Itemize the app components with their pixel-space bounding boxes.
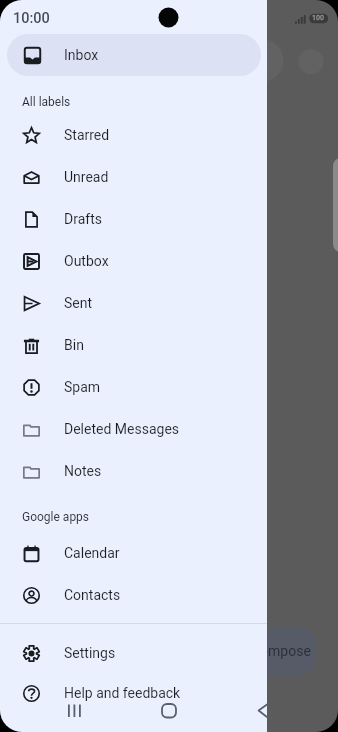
button[interactable]: Help and feedback xyxy=(0,672,267,714)
staticText: 100 xyxy=(312,14,324,22)
button[interactable]: Calendar xyxy=(0,532,267,574)
staticText: Unread xyxy=(64,169,109,185)
button[interactable]: Bin xyxy=(0,324,267,366)
staticText: Help and feedback xyxy=(64,685,181,701)
button[interactable]: Compose xyxy=(230,627,316,675)
staticText: Spam xyxy=(64,379,101,395)
staticText: Compose xyxy=(251,643,311,659)
staticText: Sent xyxy=(64,295,93,311)
staticText: Bin xyxy=(64,337,84,353)
button[interactable]: Notes xyxy=(0,450,267,492)
staticText: Deleted Messages xyxy=(64,421,180,437)
button[interactable]: Unread xyxy=(0,156,267,198)
staticText: Drafts xyxy=(64,211,102,227)
button[interactable]: Inbox xyxy=(7,34,261,76)
staticText: All labels xyxy=(22,95,71,109)
button[interactable]: Deleted Messages xyxy=(0,408,267,450)
staticText: 10:00 xyxy=(13,10,50,27)
button[interactable]: Contacts xyxy=(0,574,267,616)
button[interactable]: Drafts xyxy=(0,198,267,240)
button[interactable]: Starred xyxy=(0,114,267,156)
staticText: Notes xyxy=(64,463,102,479)
staticText: Outbox xyxy=(64,253,109,269)
staticText: Google apps xyxy=(22,510,90,524)
button[interactable]: Sent xyxy=(0,282,267,324)
staticText: Settings xyxy=(64,645,116,661)
button[interactable]: Spam xyxy=(0,366,267,408)
button[interactable]: Outbox xyxy=(0,240,267,282)
staticText: Contacts xyxy=(64,587,121,603)
staticText: Calendar xyxy=(64,545,120,561)
button[interactable]: Settings xyxy=(0,632,267,674)
staticText: Inbox xyxy=(64,47,99,63)
staticText: Starred xyxy=(64,127,110,143)
